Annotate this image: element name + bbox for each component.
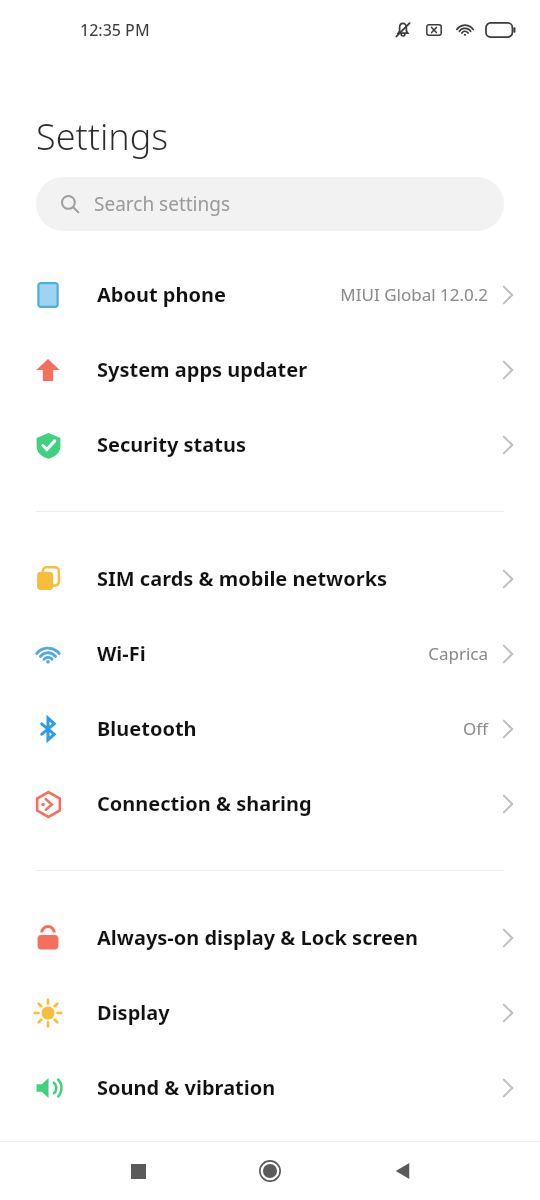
- staticText: Connection & sharing: [97, 790, 312, 817]
- button[interactable]: System apps updater: [0, 332, 540, 407]
- staticText: Caprica: [428, 642, 488, 665]
- button[interactable]: About phone: [0, 257, 540, 332]
- staticText: About phone: [97, 281, 226, 308]
- staticText: Bluetooth: [97, 715, 197, 742]
- button[interactable]: Sound & vibration: [0, 1050, 540, 1125]
- staticText: Always-on display & Lock screen: [97, 924, 418, 951]
- staticText: Display: [97, 999, 170, 1026]
- button[interactable]: Display: [0, 975, 540, 1050]
- staticText: SIM cards & mobile networks: [97, 565, 388, 592]
- staticText: Off: [463, 717, 488, 740]
- staticText: MIUI Global 12.0.2: [340, 283, 488, 306]
- staticText: 12:35 PM: [80, 19, 150, 41]
- button[interactable]: Always-on display & Lock screen: [0, 900, 540, 975]
- button[interactable]: Security status: [0, 407, 540, 482]
- button[interactable]: Wi-Fi: [0, 616, 540, 691]
- staticText: System apps updater: [97, 356, 308, 383]
- staticText: Sound & vibration: [97, 1074, 276, 1101]
- button[interactable]: Connection & sharing: [0, 766, 540, 841]
- button[interactable]: Search settings: [36, 177, 504, 231]
- staticText: Wi-Fi: [97, 640, 146, 667]
- staticText: Search settings: [94, 191, 231, 217]
- button[interactable]: Home: [246, 1147, 294, 1195]
- button[interactable]: Back: [378, 1147, 426, 1195]
- staticText: Security status: [97, 431, 246, 458]
- button[interactable]: Recents: [114, 1147, 162, 1195]
- staticText: Settings: [36, 112, 169, 161]
- button[interactable]: SIM cards & mobile networks: [0, 541, 540, 616]
- button[interactable]: Bluetooth: [0, 691, 540, 766]
